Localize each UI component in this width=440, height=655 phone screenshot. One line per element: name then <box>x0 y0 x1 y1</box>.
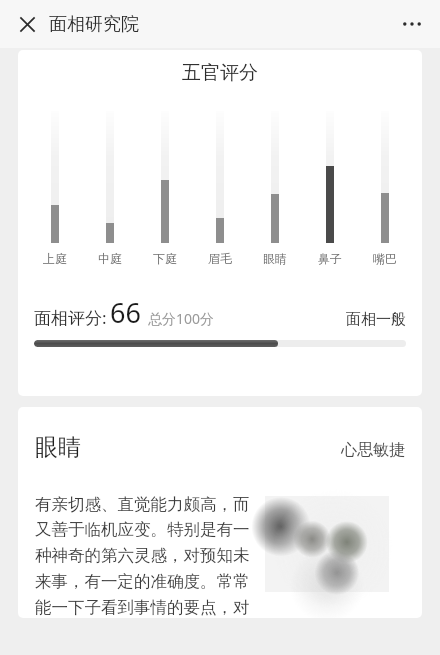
staticText: 总分100分 <box>148 309 215 328</box>
staticText: 下庭 <box>153 251 177 266</box>
staticText: 鼻子 <box>318 251 342 266</box>
staticText: 66 <box>110 294 141 331</box>
staticText: 心思敏捷 <box>341 440 405 460</box>
staticText: 面相研究院 <box>49 13 139 36</box>
staticText: 眼睛 <box>263 251 287 266</box>
staticText: 眼睛 <box>35 433 81 462</box>
staticText: 五官评分 <box>18 61 422 85</box>
staticText: 上庭 <box>43 251 67 266</box>
staticText: 眉毛 <box>208 251 232 266</box>
button[interactable]: More options <box>394 6 430 42</box>
staticText: 面相一般 <box>346 310 406 329</box>
staticText: 中庭 <box>98 251 122 266</box>
staticText: 面相评分: <box>34 306 107 329</box>
staticText: 有亲切感、直觉能力颇高，而又善于临机应变。特别是有一种神奇的第六灵感，对预知未来… <box>35 494 257 618</box>
staticText: 嘴巴 <box>373 251 397 266</box>
button[interactable]: Close <box>12 9 42 39</box>
